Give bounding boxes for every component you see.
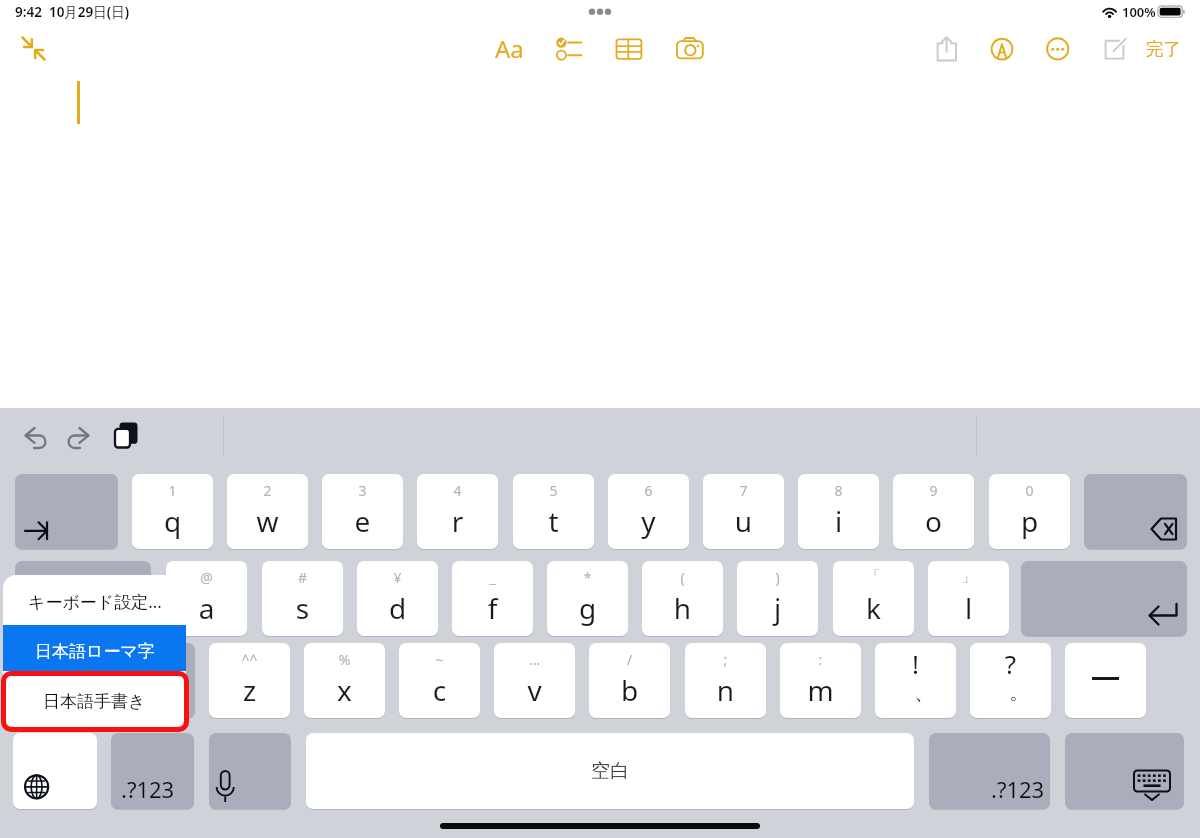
button[interactable]: Return: [1021, 561, 1187, 636]
staticText: ): [737, 568, 818, 587]
staticText: 」: [928, 568, 1009, 586]
button[interactable]: New note: [1097, 27, 1137, 67]
staticText: 100%: [1122, 3, 1156, 21]
button[interactable]: 「: [833, 561, 914, 636]
button[interactable]: *: [547, 561, 628, 636]
staticText: 8: [798, 481, 879, 500]
button[interactable]: Share: [928, 29, 966, 67]
button[interactable]: 2: [227, 474, 308, 549]
staticText: r: [417, 502, 498, 540]
button[interactable]: More options: [1038, 27, 1078, 67]
button[interactable]: 8: [798, 474, 879, 549]
button[interactable]: Hide keyboard: [1065, 733, 1184, 809]
staticText: 空白: [591, 759, 629, 783]
button[interactable]: /: [589, 643, 670, 718]
button[interactable]: Tab: [15, 474, 118, 549]
button[interactable]: ?: [970, 643, 1051, 718]
staticText: …: [494, 650, 575, 669]
staticText: d: [357, 589, 438, 627]
staticText: ~: [399, 650, 480, 669]
staticText: w: [227, 502, 308, 540]
staticText: 3: [322, 481, 403, 500]
button[interactable]: !: [875, 643, 956, 718]
staticText: u: [703, 502, 784, 540]
button[interactable]: @: [166, 561, 247, 636]
staticText: %: [304, 650, 385, 669]
staticText: 「: [833, 568, 914, 586]
staticText: .?123: [121, 774, 175, 804]
button[interactable]: Long vowel mark: [1065, 643, 1146, 718]
button[interactable]: ;: [685, 643, 766, 718]
staticText: v: [494, 671, 575, 709]
button[interactable]: (: [642, 561, 723, 636]
button[interactable]: 完了: [1140, 28, 1186, 70]
button[interactable]: 9: [893, 474, 974, 549]
button[interactable]: Aa: [487, 26, 531, 70]
button[interactable]: ): [737, 561, 818, 636]
button[interactable]: Backspace: [1084, 474, 1187, 549]
button[interactable]: 日本語手書き: [3, 671, 186, 727]
button[interactable]: ¥: [357, 561, 438, 636]
staticText: l: [928, 589, 1009, 627]
staticText: a: [166, 589, 247, 627]
button[interactable]: Checklist: [546, 30, 586, 70]
button[interactable]: 0: [989, 474, 1070, 549]
button[interactable]: Table: [608, 30, 648, 70]
button[interactable]: ~: [399, 643, 480, 718]
button[interactable]: Shift: [15, 643, 195, 718]
staticText: m: [780, 671, 861, 709]
button[interactable]: Dictate: [209, 733, 291, 809]
button[interactable]: Switch keyboard: [13, 733, 97, 809]
button[interactable]: 5: [513, 474, 594, 549]
staticText: k: [833, 589, 914, 627]
staticText: キーボード設定...: [28, 590, 162, 613]
button[interactable]: Markup: [982, 27, 1022, 67]
button[interactable]: 1: [132, 474, 213, 549]
staticText: o: [893, 502, 974, 540]
staticText: @: [166, 568, 247, 587]
staticText: q: [132, 502, 213, 540]
button[interactable]: 3: [322, 474, 403, 549]
button[interactable]: Undo: [20, 420, 50, 460]
button[interactable]: .?123: [929, 733, 1050, 809]
button[interactable]: 」: [928, 561, 1009, 636]
staticText: .?123: [991, 774, 1045, 804]
staticText: 日本語手書き: [43, 691, 146, 712]
button[interactable]: キーボード設定...: [3, 575, 186, 625]
button[interactable]: _: [452, 561, 533, 636]
staticText: 、: [884, 679, 956, 705]
button[interactable]: 4: [417, 474, 498, 549]
button[interactable]: Redo: [64, 420, 94, 460]
staticText: !: [875, 646, 956, 681]
button[interactable]: ^^: [209, 643, 290, 718]
button[interactable]: Camera: [667, 29, 711, 73]
staticText: _: [452, 568, 533, 587]
staticText: h: [642, 589, 723, 627]
staticText: (: [642, 568, 723, 587]
staticText: 4: [417, 481, 498, 500]
button[interactable]: 空白: [306, 733, 914, 809]
button[interactable]: 7: [703, 474, 784, 549]
staticText: 0: [989, 481, 1070, 500]
staticText: s: [262, 589, 343, 627]
button[interactable]: Collapse: [14, 31, 54, 71]
staticText: 2: [227, 481, 308, 500]
button[interactable]: …: [494, 643, 575, 718]
button[interactable]: #: [262, 561, 343, 636]
staticText: z: [209, 671, 290, 709]
button[interactable]: 日本語ローマ字: [3, 625, 186, 671]
button[interactable]: 6: [608, 474, 689, 549]
button[interactable]: :: [780, 643, 861, 718]
staticText: 6: [608, 481, 689, 500]
staticText: g: [547, 589, 628, 627]
staticText: 日本語ローマ字: [35, 641, 155, 662]
staticText: 9:42 10月29日(日): [15, 3, 130, 21]
staticText: j: [737, 589, 818, 627]
button[interactable]: .?123: [111, 733, 194, 809]
staticText: 1: [132, 481, 213, 500]
staticText: t: [513, 502, 594, 540]
button[interactable]: Paste: [112, 419, 142, 455]
button[interactable]: %: [304, 643, 385, 718]
staticText: #: [262, 568, 343, 587]
button[interactable]: Caps lock: [15, 561, 151, 636]
